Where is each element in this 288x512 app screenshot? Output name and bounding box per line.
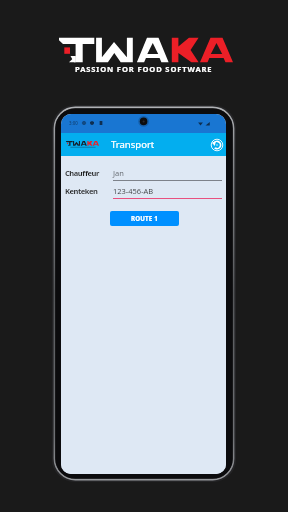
staticText: 123-456-AB <box>113 186 154 196</box>
staticText: Transport <box>111 138 155 151</box>
button[interactable]: TWAKA home <box>66 141 99 149</box>
button[interactable]: ROUTE 1 <box>110 211 179 226</box>
staticText: ROUTE 1 <box>131 214 158 222</box>
staticText: Kenteken <box>65 186 98 196</box>
staticText: PASSION FOR FOOD SOFTWARE <box>75 64 213 74</box>
staticText: Chauffeur <box>65 168 99 178</box>
button[interactable]: Refresh history <box>208 136 226 154</box>
staticText: 3:00 <box>69 120 78 126</box>
staticText: Jan <box>113 168 124 178</box>
